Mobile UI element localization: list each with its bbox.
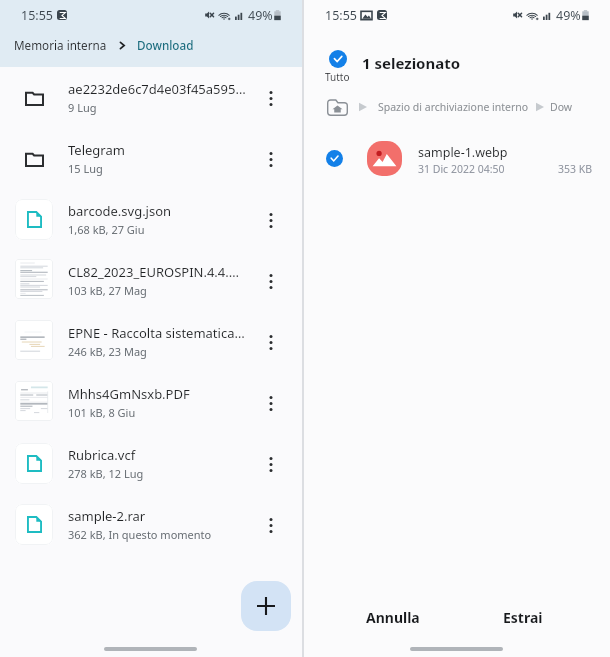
staticText: sample-2.rar [68,507,146,525]
button[interactable]: barcode.svg.json [0,189,302,250]
staticText: 31 Dic 2022 04:50 [418,162,505,176]
button[interactable]: Altre opzioni [258,329,284,355]
button[interactable]: EPNE - Raccolta sistematica… [0,311,302,372]
staticText: ae2232de6c7d4e03f45a595… [68,80,246,98]
staticText: Rubrica.vcf [68,446,136,464]
staticText: Estrai [503,608,543,627]
button[interactable]: Mhhs4GmNsxb.PDF [0,372,302,433]
button[interactable]: sample-1.webp [304,131,610,186]
staticText: 1 selezionato [362,53,461,73]
button[interactable]: Altre opzioni [258,512,284,538]
staticText: Memoria interna [14,37,107,53]
staticText: 15:55 [325,7,357,24]
button[interactable]: Home [326,96,349,119]
button[interactable]: Telegram [0,128,302,189]
staticText: 103 kB, 27 Mag [68,283,147,298]
staticText: 15 Lug [68,161,103,176]
staticText: 49% [248,7,273,24]
staticText: 353 KB [558,162,593,176]
button[interactable]: ae2232de6c7d4e03f45a595… [0,67,302,128]
button[interactable]: CL82_2023_EUROSPIN.4.4.… [0,250,302,311]
staticText: 246 kB, 23 Mag [68,344,147,359]
staticText: Spazio di archiviazione interno [378,100,529,114]
button[interactable]: Estrai [468,598,578,636]
button[interactable]: sample-2.rar [0,494,302,555]
staticText: sample-1.webp [418,144,508,161]
button[interactable]: Altre opzioni [258,207,284,233]
staticText: 9 Lug [68,100,97,115]
button[interactable]: Altre opzioni [258,146,284,172]
staticText: barcode.svg.json [68,202,172,220]
staticText: 49% [556,7,581,24]
button[interactable]: Tutto [325,50,350,84]
button[interactable]: Altre opzioni [258,85,284,111]
staticText: EPNE - Raccolta sistematica… [68,324,245,342]
staticText: Tutto [325,70,350,84]
staticText: Download [137,37,194,53]
button[interactable]: Rubrica.vcf [0,433,302,494]
button[interactable]: Annulla [338,598,448,636]
staticText: 15:55 [21,7,53,24]
staticText: CL82_2023_EUROSPIN.4.4.… [68,263,240,281]
staticText: 101 kB, 8 Giu [68,405,136,420]
button[interactable]: Aggiungi [241,581,291,631]
button[interactable]: Altre opzioni [258,451,284,477]
button[interactable]: Altre opzioni [258,390,284,416]
staticText: Mhhs4GmNsxb.PDF [68,385,190,403]
staticText: Annulla [366,608,420,627]
staticText: 1,68 kB, 27 Giu [68,222,145,237]
staticText: Telegram [68,141,125,159]
staticText: 278 kB, 12 Lug [68,466,144,481]
staticText: 362 kB, In questo momento [68,527,212,542]
button[interactable]: Altre opzioni [258,268,284,294]
staticText: Dow [550,100,573,114]
